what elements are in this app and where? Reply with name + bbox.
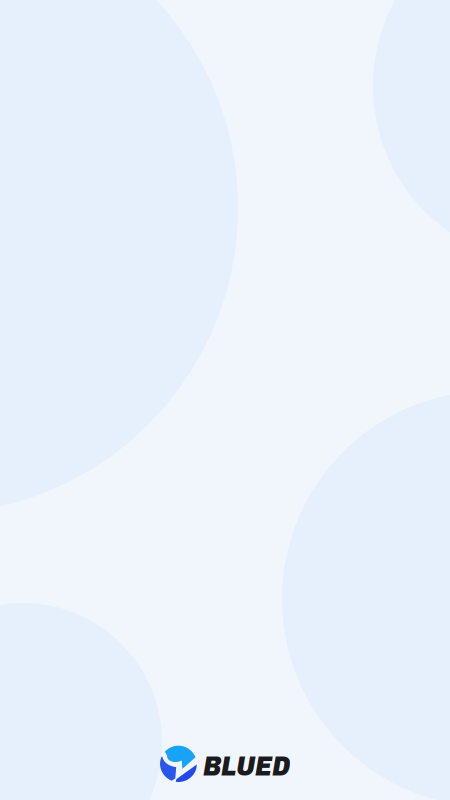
staticText: BLUED xyxy=(203,752,290,781)
